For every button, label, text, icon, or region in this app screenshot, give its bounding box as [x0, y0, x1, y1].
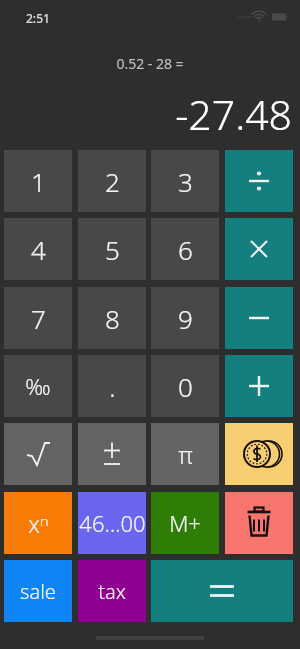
staticText: 1 [31, 164, 46, 199]
staticText: 8 [105, 301, 120, 336]
staticText: ‰ [25, 371, 51, 401]
button[interactable]: Square root [4, 423, 72, 485]
button[interactable]: Plus minus sign [78, 423, 146, 485]
button[interactable]: Add [225, 355, 293, 417]
button[interactable]: . [78, 355, 146, 417]
button[interactable]: Delete [225, 492, 293, 554]
staticText: 7 [31, 301, 46, 336]
button[interactable]: Multiply [225, 218, 293, 280]
staticText: 2 [105, 164, 120, 199]
button[interactable]: Equals [151, 560, 293, 622]
staticText: . [109, 369, 116, 404]
button[interactable]: π [151, 423, 219, 485]
staticText: 0.52 - 28 = [0, 54, 300, 73]
staticText: xⁿ [28, 508, 49, 539]
staticText: π [178, 439, 193, 470]
staticText: M+ [169, 508, 201, 538]
button[interactable]: 5 [78, 218, 146, 280]
staticText: sale [20, 578, 56, 605]
staticText: tax [98, 578, 126, 605]
staticText: 46…00 [79, 508, 146, 538]
button[interactable]: Subtract [225, 287, 293, 349]
staticText: 2:51 [26, 10, 50, 26]
staticText: -27.48 [0, 86, 292, 142]
button[interactable]: 2 [78, 150, 146, 212]
button[interactable]: Divide [225, 150, 293, 212]
button[interactable]: 9 [151, 287, 219, 349]
staticText: 9 [178, 301, 193, 336]
button[interactable]: Currency [225, 423, 293, 485]
button[interactable]: 1 [4, 150, 72, 212]
button[interactable]: 4 [4, 218, 72, 280]
staticText: 4 [31, 232, 46, 267]
staticText: 5 [105, 232, 120, 267]
staticText: 6 [178, 232, 193, 267]
button[interactable]: xⁿ [4, 492, 72, 554]
button[interactable]: M+ [151, 492, 219, 554]
button[interactable]: sale [4, 560, 72, 622]
button[interactable]: 0 [151, 355, 219, 417]
button[interactable]: 8 [78, 287, 146, 349]
button[interactable]: tax [78, 560, 146, 622]
staticText: 3 [178, 164, 193, 199]
button[interactable]: 6 [151, 218, 219, 280]
button[interactable]: 46…00 [78, 492, 146, 554]
button[interactable]: 7 [4, 287, 72, 349]
staticText: 0 [178, 369, 193, 404]
button[interactable]: ‰ [4, 355, 72, 417]
button[interactable]: 3 [151, 150, 219, 212]
